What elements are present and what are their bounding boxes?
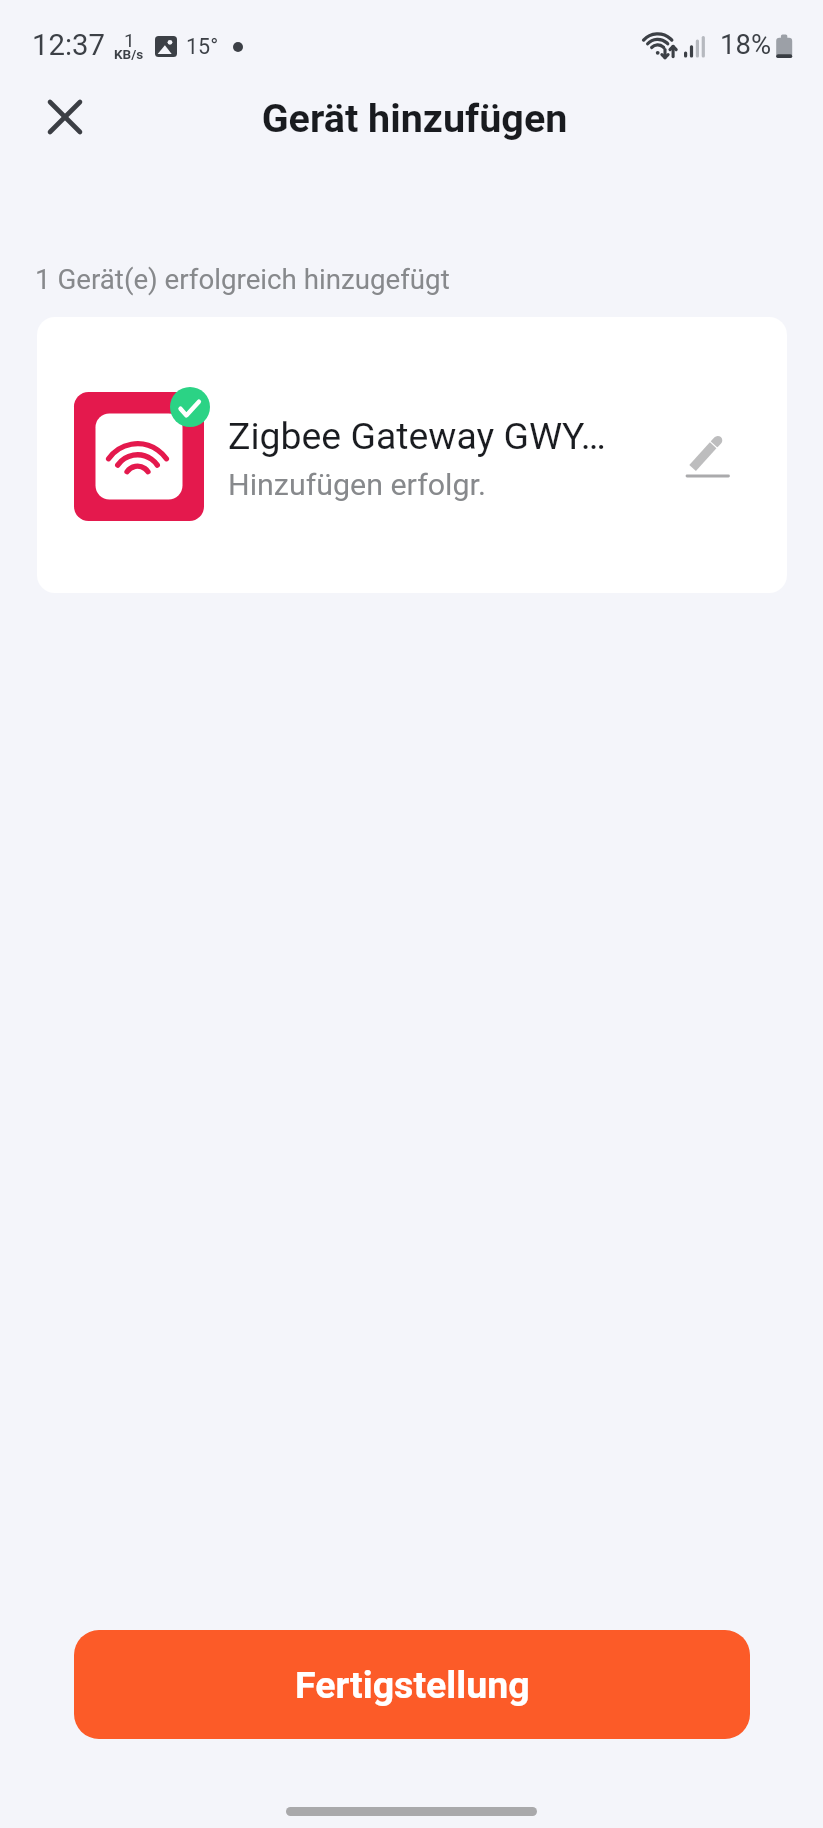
- button[interactable]: Fertigstellung: [74, 1630, 750, 1739]
- staticText: Fertigstellung: [295, 1663, 530, 1707]
- staticText: 15°: [186, 34, 219, 59]
- staticText: KB/s: [114, 46, 144, 62]
- button[interactable]: Zigbee Gateway GWY…: [37, 317, 787, 593]
- staticText: 18%: [720, 28, 772, 60]
- staticText: 1: [124, 29, 135, 51]
- staticText: Zigbee Gateway GWY…: [228, 414, 606, 458]
- button[interactable]: Close: [22, 75, 107, 159]
- button[interactable]: Rename device: [671, 422, 745, 496]
- staticText: 1 Gerät(e) erfolgreich hinzugefügt: [35, 263, 450, 295]
- staticText: Gerät hinzufügen: [3, 95, 823, 141]
- staticText: Hinzufügen erfolgr.: [228, 467, 486, 503]
- staticText: 12:37: [32, 28, 105, 62]
